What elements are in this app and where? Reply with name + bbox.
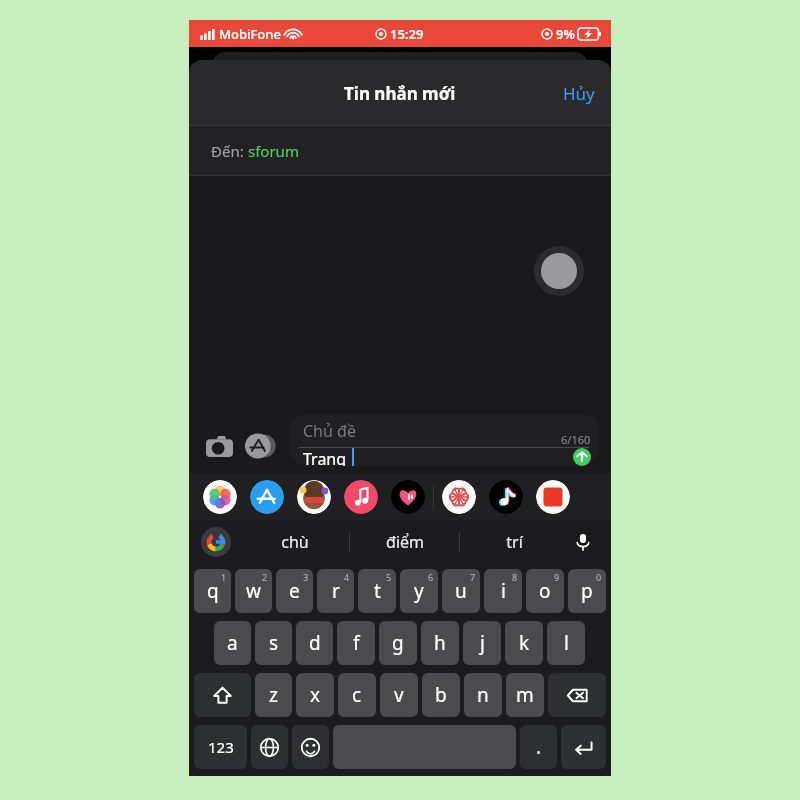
staticText: Hủy	[563, 82, 595, 105]
button[interactable]: y	[400, 569, 438, 613]
staticText: điểm	[386, 531, 424, 553]
button[interactable]: Change language	[251, 725, 288, 769]
button[interactable]: chù	[241, 520, 349, 564]
button[interactable]: trí	[460, 520, 569, 564]
button[interactable]: App	[250, 480, 284, 514]
button[interactable]: t	[358, 569, 396, 613]
button[interactable]: e	[276, 569, 313, 613]
staticText: Chủ đề	[303, 420, 356, 442]
button[interactable]: App	[203, 480, 237, 514]
button[interactable]: App	[344, 480, 378, 514]
button[interactable]: điểm	[350, 520, 459, 564]
button[interactable]: Voice input	[569, 528, 597, 556]
button[interactable]: App	[442, 480, 476, 514]
button[interactable]: l	[547, 621, 585, 665]
staticText: y	[414, 578, 424, 604]
staticText: x	[310, 682, 321, 708]
staticText: 2	[262, 571, 268, 583]
staticText: c	[352, 682, 362, 708]
button[interactable]: App	[489, 480, 523, 514]
button[interactable]: c	[338, 673, 376, 717]
button[interactable]: Google	[201, 527, 231, 557]
staticText: d	[309, 630, 321, 656]
button[interactable]: App Store	[243, 428, 279, 464]
button[interactable]: s	[255, 621, 292, 665]
staticText: Tin nhắn mới	[344, 82, 456, 105]
staticText: Trang	[303, 448, 347, 466]
staticText: 1	[221, 571, 227, 583]
button[interactable]: 123	[194, 725, 247, 769]
staticText: sforum	[248, 141, 299, 161]
button[interactable]: j	[463, 621, 501, 665]
staticText: 0	[596, 571, 602, 583]
button[interactable]: g	[379, 621, 417, 665]
button[interactable]: Backspace	[548, 673, 606, 717]
button[interactable]: v	[380, 673, 418, 717]
button[interactable]: h	[421, 621, 459, 665]
button[interactable]: m	[506, 673, 544, 717]
button[interactable]: n	[464, 673, 502, 717]
button[interactable]: w	[235, 569, 272, 613]
staticText: q	[207, 578, 219, 604]
button[interactable]: Emoji	[292, 725, 329, 769]
button[interactable]: b	[422, 673, 460, 717]
button[interactable]: f	[337, 621, 375, 665]
staticText: m	[516, 682, 534, 708]
button[interactable]: .	[520, 725, 557, 769]
button[interactable]: d	[296, 621, 333, 665]
staticText: w	[246, 578, 261, 604]
button[interactable]: Record	[534, 246, 584, 296]
staticText: 9	[554, 571, 560, 583]
staticText: b	[435, 682, 447, 708]
staticText: o	[539, 578, 551, 604]
staticText: 15:29	[390, 25, 424, 43]
staticText: p	[581, 578, 593, 604]
staticText: g	[392, 630, 404, 656]
button[interactable]: r	[317, 569, 354, 613]
staticText: l	[564, 630, 569, 656]
button[interactable]: Chủ đề	[289, 414, 599, 466]
staticText: 123	[208, 737, 234, 757]
staticText: k	[519, 630, 530, 656]
button[interactable]: u	[442, 569, 480, 613]
button[interactable]: Hủy	[547, 72, 611, 115]
button[interactable]: Send	[568, 448, 596, 466]
button[interactable]: k	[505, 621, 543, 665]
button[interactable]: q	[194, 569, 231, 613]
staticText: s	[269, 630, 279, 656]
staticText: MobiFone	[219, 25, 281, 43]
button[interactable]: Camera	[201, 428, 237, 464]
button[interactable]: App	[536, 480, 570, 514]
staticText: trí	[506, 531, 523, 553]
staticText: e	[289, 578, 300, 604]
staticText: a	[227, 630, 238, 656]
button[interactable]: i	[484, 569, 522, 613]
staticText: 8	[512, 571, 518, 583]
staticText: 4	[344, 571, 350, 583]
staticText: chù	[281, 531, 309, 553]
staticText: v	[394, 682, 404, 708]
button[interactable]: Shift	[194, 673, 251, 717]
button[interactable]: a	[214, 621, 251, 665]
button[interactable]: Enter	[561, 725, 606, 769]
staticText: i	[501, 578, 506, 604]
button[interactable]: x	[296, 673, 334, 717]
staticText: 9%	[556, 25, 575, 43]
button[interactable]: p	[568, 569, 606, 613]
staticText: n	[477, 682, 489, 708]
button[interactable]: o	[526, 569, 564, 613]
staticText: 7	[470, 571, 476, 583]
staticText: 6	[428, 571, 434, 583]
button[interactable]: App	[297, 480, 331, 514]
staticText: 5	[386, 571, 392, 583]
button[interactable]: Đến:	[189, 126, 611, 176]
staticText: j	[480, 630, 485, 656]
button[interactable]: z	[255, 673, 292, 717]
staticText: r	[332, 578, 340, 604]
staticText: 3	[303, 571, 309, 583]
button[interactable]: App	[391, 480, 425, 514]
staticText: Đến:	[211, 141, 248, 161]
staticText: f	[353, 630, 360, 656]
staticText: .	[536, 734, 542, 760]
